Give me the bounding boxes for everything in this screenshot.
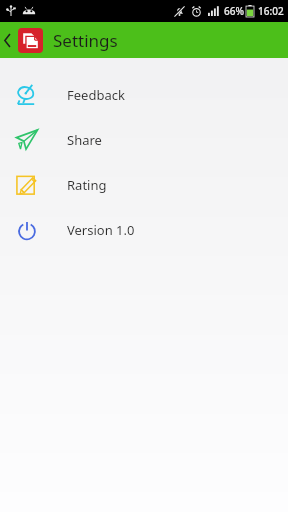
other: App icon <box>18 28 43 53</box>
staticText: Rating <box>67 176 107 194</box>
staticText: Version 1.0 <box>67 221 135 239</box>
button[interactable]: Back <box>0 22 15 58</box>
button[interactable]: Feedback <box>0 72 288 117</box>
button[interactable]: Share <box>0 117 288 162</box>
staticText: 16:02 <box>258 4 284 18</box>
staticText: 66% <box>224 4 244 18</box>
staticText: Feedback <box>67 86 125 104</box>
button[interactable]: Version 1.0 <box>0 207 288 252</box>
staticText: Share <box>67 131 102 149</box>
button[interactable]: Rating <box>0 162 288 207</box>
staticText: Settings <box>53 29 118 52</box>
